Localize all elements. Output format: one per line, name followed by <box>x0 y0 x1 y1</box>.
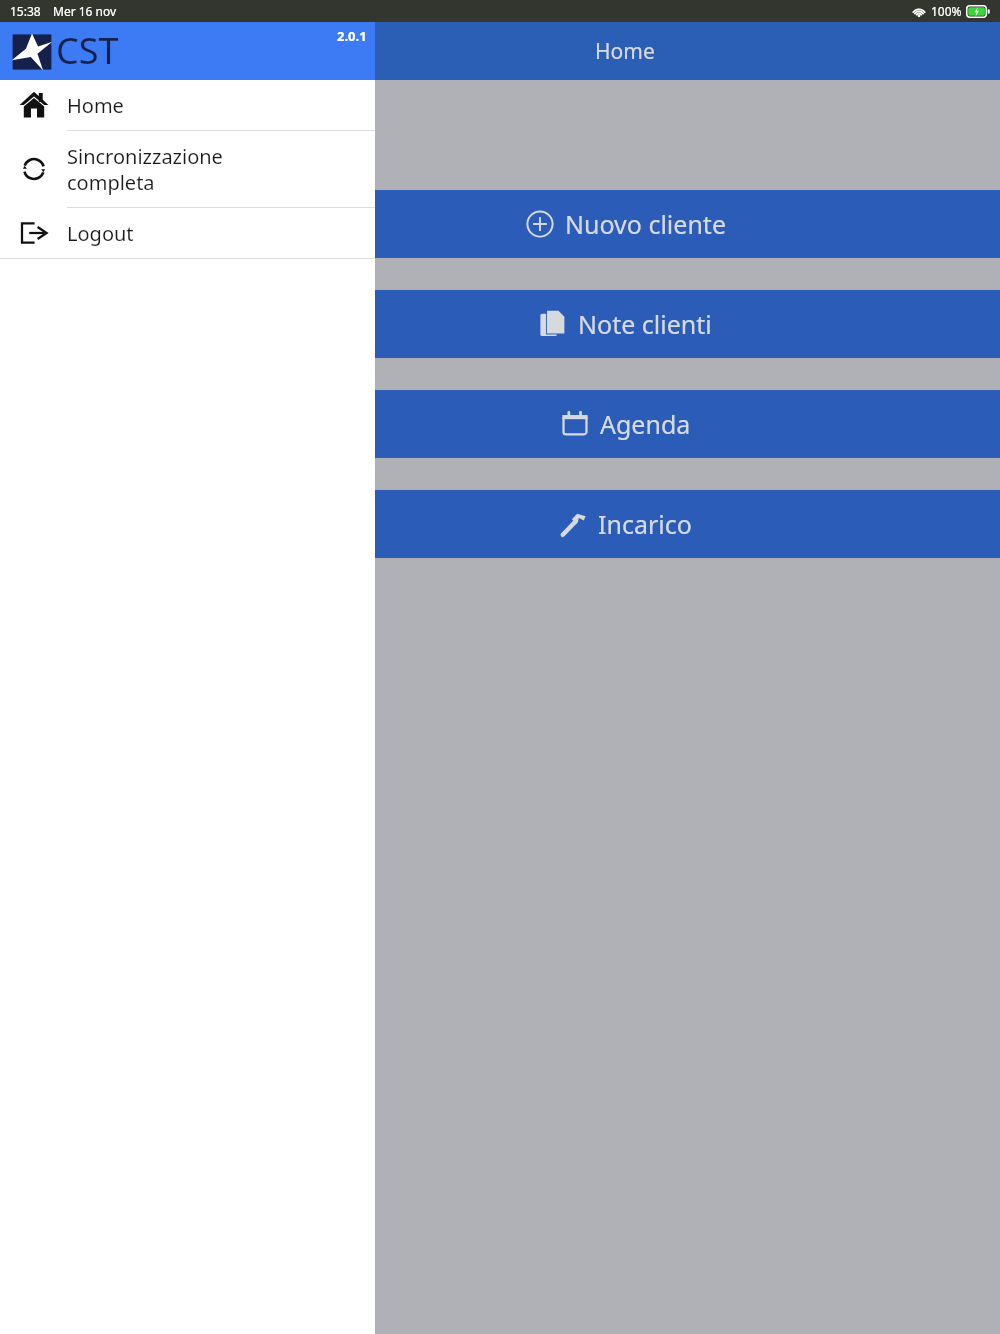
staticText: Home <box>67 92 124 119</box>
staticText: 2.0.1 <box>337 27 367 45</box>
staticText: Agenda <box>600 407 691 441</box>
button[interactable]: Incarico <box>0 490 1000 558</box>
staticText: CST <box>56 26 119 75</box>
button[interactable]: Sincronizzazione completa <box>0 131 375 207</box>
staticText: Nuovo cliente <box>565 207 726 241</box>
staticText: Sincronizzazione completa <box>67 143 223 195</box>
staticText: Mer 16 nov <box>53 3 117 19</box>
staticText: 100% <box>931 3 962 19</box>
staticText: Note clienti <box>578 307 712 341</box>
button[interactable]: Agenda <box>0 390 1000 458</box>
staticText: Incarico <box>598 507 692 541</box>
staticText: Logout <box>67 220 134 247</box>
button[interactable]: Logout <box>0 208 375 258</box>
button[interactable]: Note clienti <box>0 290 1000 358</box>
button[interactable]: Open navigation menu <box>12 27 60 75</box>
button[interactable]: Home <box>0 80 375 130</box>
button[interactable]: Nuovo cliente <box>0 190 1000 258</box>
staticText: 15:38 <box>10 3 41 19</box>
staticText: Home <box>595 37 655 66</box>
